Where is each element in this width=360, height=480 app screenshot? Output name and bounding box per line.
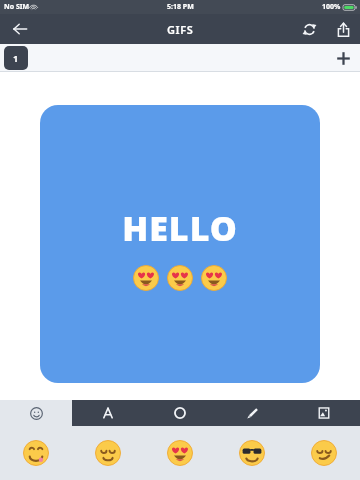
staticText: 1 [13,52,19,64]
button[interactable]: Text [72,400,144,426]
button[interactable]: Back [0,14,40,44]
staticText: 5:18 PM [167,2,194,12]
button[interactable]: Brush [216,400,288,426]
button[interactable]: Emoji [72,426,144,480]
staticText: 100% [322,2,341,12]
button[interactable]: Emoji [0,426,72,480]
button[interactable]: HELLO [40,105,320,383]
staticText: No SIM [4,2,30,12]
button[interactable]: Image [288,400,360,426]
button[interactable]: Add [326,44,360,72]
button[interactable]: Emoji [144,426,216,480]
button[interactable]: Refresh [292,14,326,44]
button[interactable]: 1 [4,46,28,70]
button[interactable]: Shapes [144,400,216,426]
button[interactable]: Share [326,14,360,44]
button[interactable]: Emoji [288,426,360,480]
button[interactable]: Emoji [0,400,72,426]
button[interactable]: Emoji [216,426,288,480]
staticText: GIFS [167,22,194,37]
staticText: HELLO [122,205,238,251]
